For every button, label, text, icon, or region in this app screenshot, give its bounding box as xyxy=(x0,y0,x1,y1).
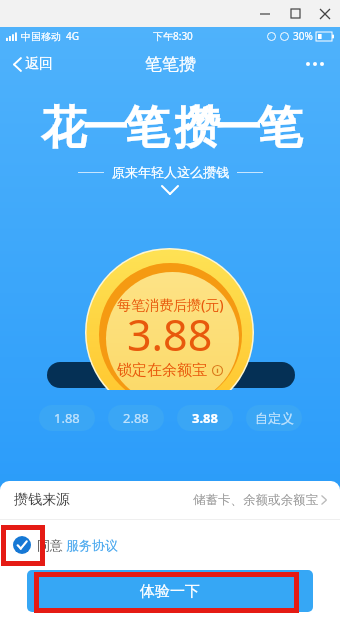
button[interactable]: Agree to terms xyxy=(13,536,31,554)
staticText: 1.88 xyxy=(54,409,80,427)
staticText: 4G xyxy=(66,29,79,43)
staticText: 花一笔 攒一笔 xyxy=(0,95,340,156)
staticText: 3.88 xyxy=(127,305,213,364)
staticText: 返回 xyxy=(25,55,53,73)
button[interactable]: Close xyxy=(310,0,340,27)
staticText: 3.88 xyxy=(192,409,218,427)
button[interactable]: 2.88 xyxy=(108,405,164,431)
staticText: 自定义 xyxy=(255,410,294,426)
button[interactable]: 返回 xyxy=(10,51,57,77)
staticText: 原来年轻人这么攒钱 xyxy=(112,164,229,180)
staticText: 储蓄卡、余额或余额宝 xyxy=(193,492,318,508)
button[interactable]: Maximize xyxy=(280,0,310,27)
staticText: 下午8:30 xyxy=(153,29,193,43)
button[interactable]: Minimize xyxy=(250,0,280,27)
staticText: 攒钱来源 xyxy=(14,491,70,509)
staticText: 锁定在余额宝 xyxy=(117,361,207,380)
staticText: 体验一下 xyxy=(140,582,200,601)
button[interactable]: 服务协议 xyxy=(66,537,118,553)
staticText: 2.88 xyxy=(123,409,149,427)
staticText: 笔笔攒 xyxy=(145,54,196,75)
button[interactable]: More options xyxy=(300,49,330,79)
button[interactable]: 自定义 xyxy=(246,405,302,431)
button[interactable]: 1.88 xyxy=(39,405,95,431)
button[interactable]: 3.88 xyxy=(177,405,233,431)
staticText: 每笔消费后攒(元) xyxy=(117,295,224,314)
button[interactable]: 攒钱来源 xyxy=(0,481,340,519)
button[interactable]: 体验一下 xyxy=(27,570,313,612)
staticText: 同意 xyxy=(37,537,63,553)
staticText: 30% xyxy=(293,29,313,43)
staticText: 中国移动 xyxy=(21,30,61,43)
